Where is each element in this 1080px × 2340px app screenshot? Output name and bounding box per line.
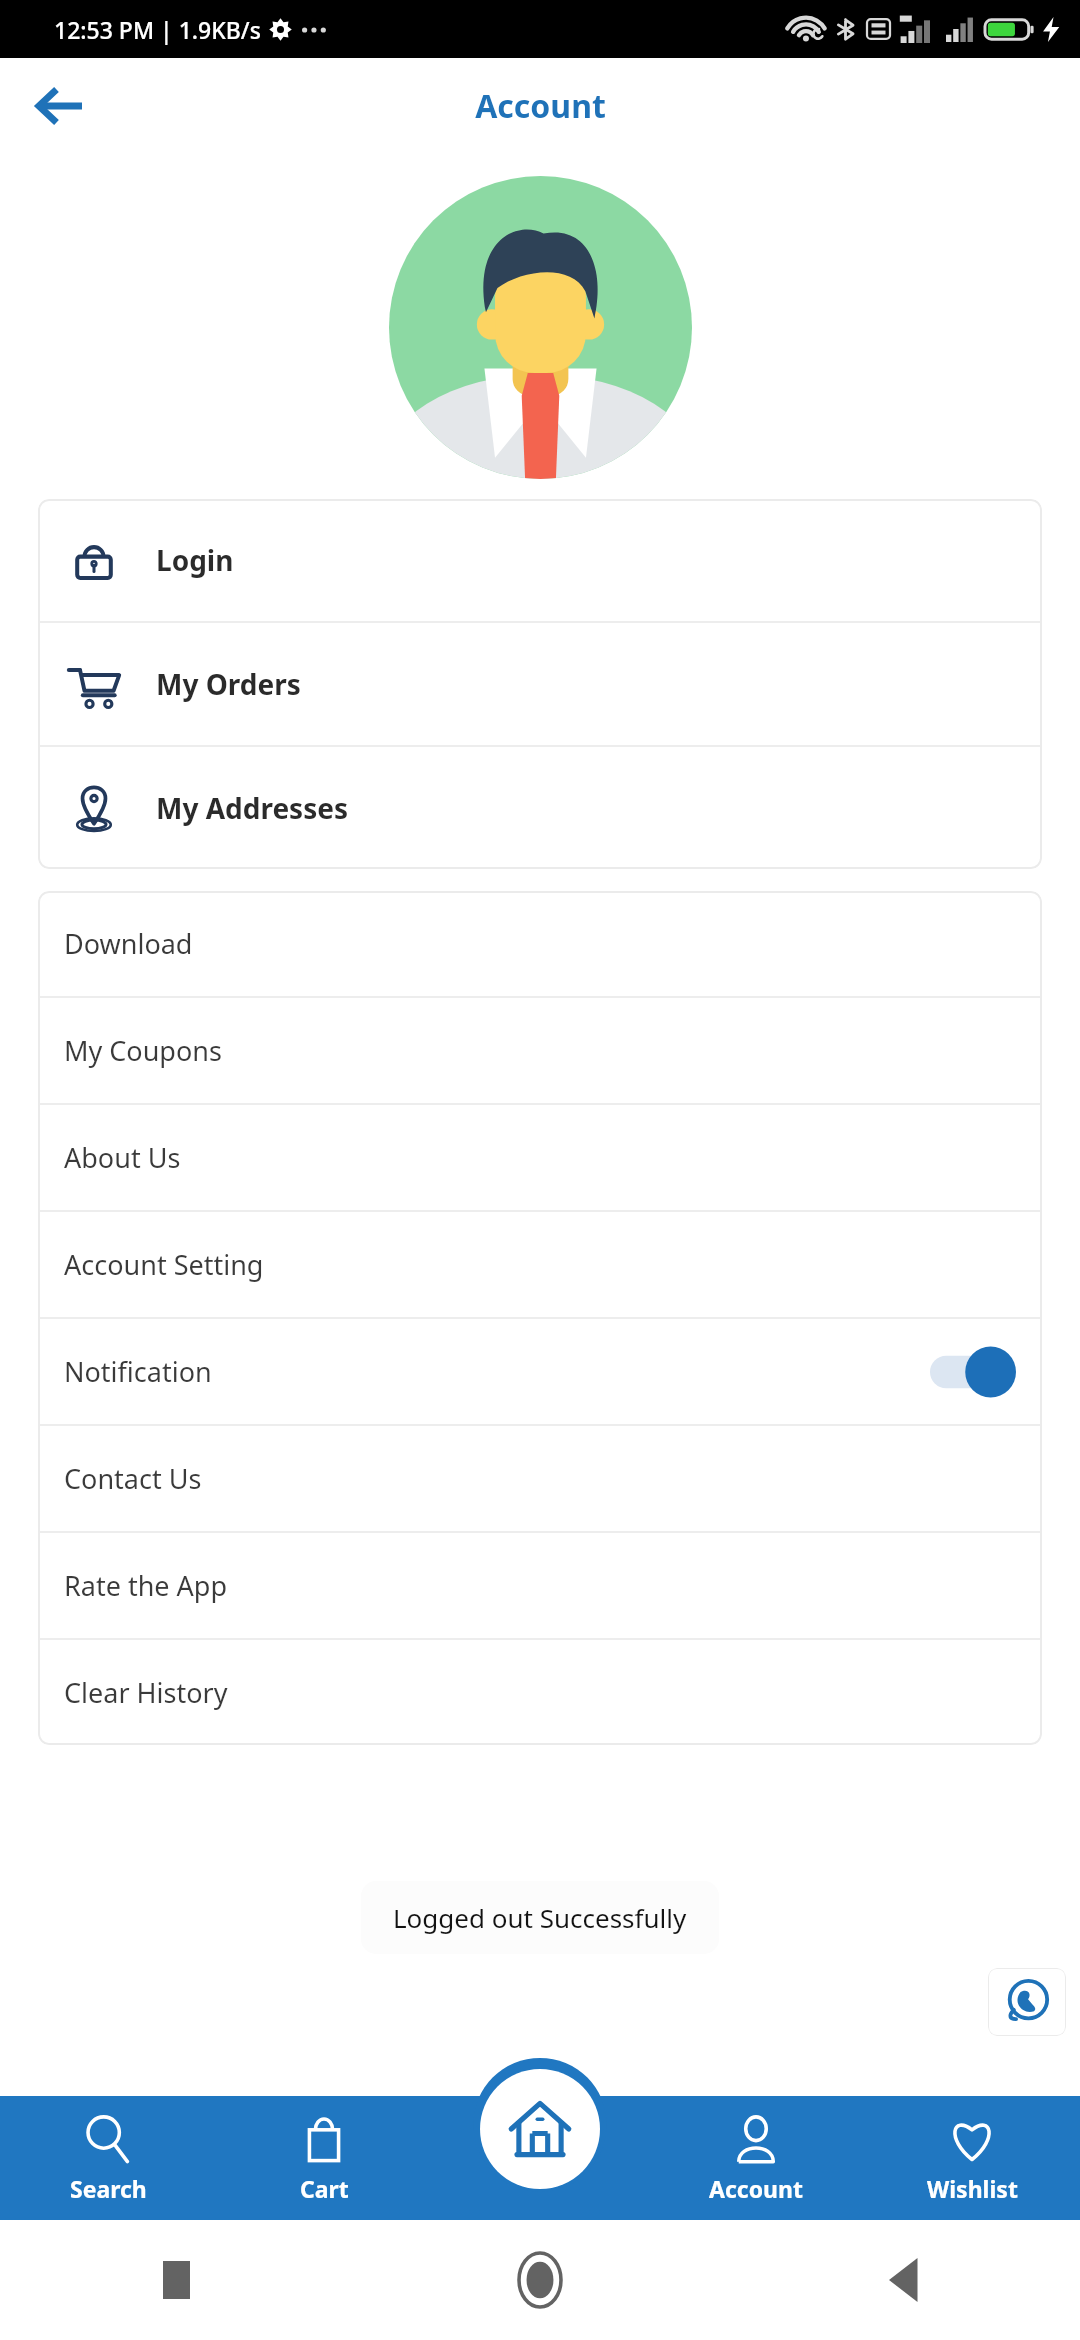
button[interactable]: My Orders xyxy=(38,623,1042,745)
button[interactable]: My Coupons xyxy=(38,998,1042,1103)
button[interactable]: Home xyxy=(480,2069,600,2189)
button[interactable]: Download xyxy=(38,891,1042,996)
staticText: My Orders xyxy=(156,665,301,703)
staticText: Search xyxy=(70,2173,147,2204)
button[interactable]: Login xyxy=(38,499,1042,621)
button[interactable]: Cart xyxy=(216,2096,432,2220)
staticText: Download xyxy=(64,925,193,962)
button[interactable]: Contact Us xyxy=(38,1426,1042,1531)
staticText: Cart xyxy=(300,2173,349,2204)
button[interactable]: Recent apps xyxy=(150,2254,202,2306)
button[interactable]: Notification toggle xyxy=(930,1345,1016,1399)
staticText: Logged out Successfully xyxy=(393,1900,687,1935)
button[interactable]: Chat on WhatsApp xyxy=(988,1968,1066,2036)
button[interactable]: Account xyxy=(648,2096,864,2220)
staticText: Clear History xyxy=(64,1674,228,1711)
staticText: About Us xyxy=(64,1139,181,1176)
button[interactable]: About Us xyxy=(38,1105,1042,1210)
staticText: Notification xyxy=(64,1353,212,1390)
staticText: Login xyxy=(156,541,234,579)
button[interactable]: My Addresses xyxy=(38,747,1042,869)
button[interactable]: Search xyxy=(0,2096,216,2220)
staticText: Account Setting xyxy=(64,1246,264,1283)
staticText: My Coupons xyxy=(64,1032,222,1069)
staticText: Contact Us xyxy=(64,1460,202,1497)
button[interactable]: Home xyxy=(511,2251,569,2309)
button[interactable]: Wishlist xyxy=(864,2096,1080,2220)
button[interactable]: Clear History xyxy=(38,1640,1042,1745)
staticText: 12:53 PM | 1.9KB/s xyxy=(54,14,261,45)
staticText: My Addresses xyxy=(156,789,348,827)
button[interactable]: Rate the App xyxy=(38,1533,1042,1638)
staticText: Account xyxy=(475,84,606,128)
button[interactable]: Back xyxy=(26,72,94,140)
staticText: Rate the App xyxy=(64,1567,228,1604)
staticText: Wishlist xyxy=(927,2173,1018,2204)
button[interactable]: Notification xyxy=(38,1319,1042,1424)
button[interactable]: Account Setting xyxy=(38,1212,1042,1317)
button[interactable]: Back xyxy=(878,2254,930,2306)
staticText: Account xyxy=(709,2173,803,2204)
